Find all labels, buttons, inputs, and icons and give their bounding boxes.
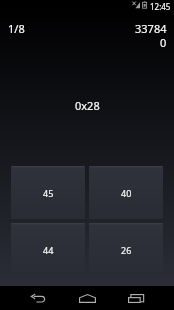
staticText: 1/8 (8, 21, 25, 36)
button[interactable]: Back (29, 288, 47, 308)
button[interactable]: 26 (89, 223, 163, 276)
button[interactable]: Home (77, 288, 97, 308)
staticText: 0 (160, 35, 167, 50)
staticText: 44 (43, 244, 54, 256)
button[interactable]: 45 (11, 166, 85, 219)
button[interactable]: 40 (89, 166, 163, 219)
button[interactable]: Recent apps (127, 288, 145, 308)
staticText: 40 (121, 187, 132, 199)
button[interactable]: 44 (11, 223, 85, 276)
staticText: 45 (43, 187, 54, 199)
staticText: 12:45 (150, 1, 171, 12)
staticText: 0x28 (75, 98, 100, 113)
staticText: 26 (121, 244, 132, 256)
staticText: 33784 (135, 21, 167, 36)
